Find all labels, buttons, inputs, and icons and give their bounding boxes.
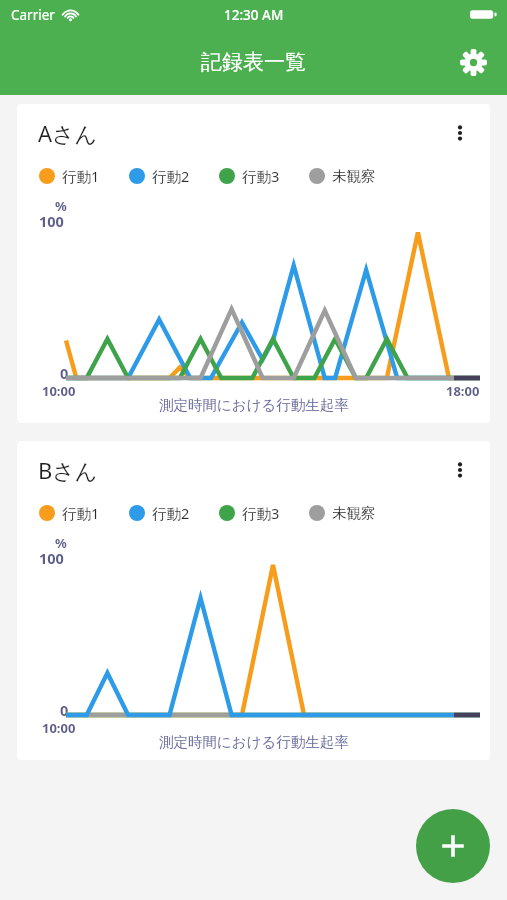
button[interactable]: Settings [449, 38, 497, 86]
staticText: Carrier [11, 6, 55, 24]
staticText: 行動3 [242, 166, 280, 186]
staticText: 測定時間における行動生起率 [159, 733, 349, 751]
staticText: 行動1 [62, 166, 100, 186]
staticText: 記録表一覧 [201, 49, 306, 75]
staticText: 12:30 AM [224, 6, 284, 24]
staticText: 18:00 [446, 382, 480, 400]
staticText: 行動2 [152, 166, 190, 186]
button[interactable]: More options for Aさん [442, 115, 478, 151]
staticText: % [55, 534, 67, 552]
staticText: 0 [60, 700, 69, 720]
staticText: 行動1 [62, 503, 100, 523]
staticText: 未観察 [332, 167, 376, 185]
staticText: 100 [39, 548, 64, 568]
button[interactable]: More options for Bさん [442, 452, 478, 488]
staticText: 行動3 [242, 503, 280, 523]
staticText: 10:00 [42, 719, 76, 737]
staticText: 0 [60, 363, 69, 383]
staticText: 未観察 [332, 504, 376, 522]
button[interactable]: Bさん [17, 441, 490, 760]
staticText: 100 [39, 211, 64, 231]
button[interactable]: Aさん [17, 104, 490, 423]
staticText: 行動2 [152, 503, 190, 523]
staticText: % [55, 197, 67, 215]
button[interactable]: Add record [416, 809, 490, 883]
staticText: Aさん [38, 118, 98, 148]
staticText: 測定時間における行動生起率 [159, 396, 349, 414]
staticText: 10:00 [42, 382, 76, 400]
staticText: Bさん [38, 455, 98, 485]
